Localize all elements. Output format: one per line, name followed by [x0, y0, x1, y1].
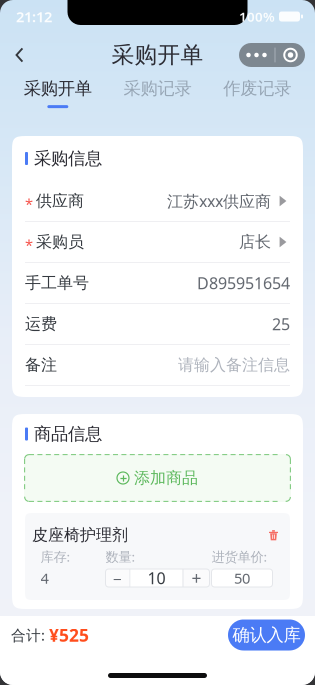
- button[interactable]: 作废记录: [207, 77, 307, 114]
- button[interactable]: 采购开单: [8, 77, 108, 114]
- staticText: 请输入备注信息: [178, 355, 290, 375]
- button[interactable]: 采购记录: [108, 77, 207, 114]
- staticText: 50: [234, 568, 250, 588]
- staticText: 21:12: [16, 7, 52, 26]
- button[interactable]: 运费: [12, 304, 303, 344]
- button[interactable]: 返回: [0, 33, 38, 77]
- staticText: 确认入库: [232, 624, 300, 646]
- staticText: 采购信息: [34, 148, 102, 169]
- staticText: 店长: [239, 232, 271, 252]
- staticText: 供应商: [36, 191, 84, 211]
- button[interactable]: 删除商品: [269, 529, 282, 540]
- button[interactable]: *: [12, 181, 303, 221]
- staticText: 添加商品: [134, 468, 198, 488]
- button[interactable]: 确认入库: [228, 619, 305, 650]
- staticText: 商品信息: [34, 423, 102, 445]
- staticText: 25: [272, 313, 290, 335]
- staticText: 库存:: [40, 548, 70, 565]
- staticText: –: [113, 566, 122, 589]
- staticText: 采购记录: [123, 78, 191, 99]
- staticText: 10: [147, 567, 165, 589]
- button[interactable]: *: [12, 222, 303, 262]
- staticText: 采购开单: [24, 78, 92, 99]
- button[interactable]: 增加数量: [183, 569, 209, 587]
- staticText: 采购员: [36, 232, 84, 252]
- staticText: 数量:: [105, 548, 135, 565]
- button[interactable]: 手工单号: [12, 263, 303, 303]
- button[interactable]: 备注: [12, 345, 303, 385]
- staticText: *: [25, 235, 33, 254]
- staticText: 4: [40, 568, 48, 588]
- staticText: ¥525: [49, 623, 89, 646]
- staticText: D895951654: [197, 272, 290, 294]
- staticText: *: [25, 194, 33, 213]
- staticText: 进货单价:: [211, 548, 267, 565]
- button[interactable]: 添加商品: [12, 454, 303, 502]
- button[interactable]: 减少数量: [105, 569, 129, 587]
- staticText: +: [191, 566, 201, 589]
- staticText: 皮座椅护理剂: [32, 525, 128, 545]
- staticText: 备注: [25, 355, 57, 375]
- staticText: 采购开单: [111, 41, 203, 69]
- button[interactable]: 更多选项: [239, 43, 305, 67]
- staticText: 手工单号: [25, 273, 89, 293]
- staticText: 作废记录: [223, 78, 291, 99]
- staticText: 运费: [25, 314, 57, 334]
- staticText: 江苏xxx供应商: [167, 190, 271, 212]
- staticText: 100%: [239, 8, 275, 25]
- staticText: 合计:: [11, 625, 49, 645]
